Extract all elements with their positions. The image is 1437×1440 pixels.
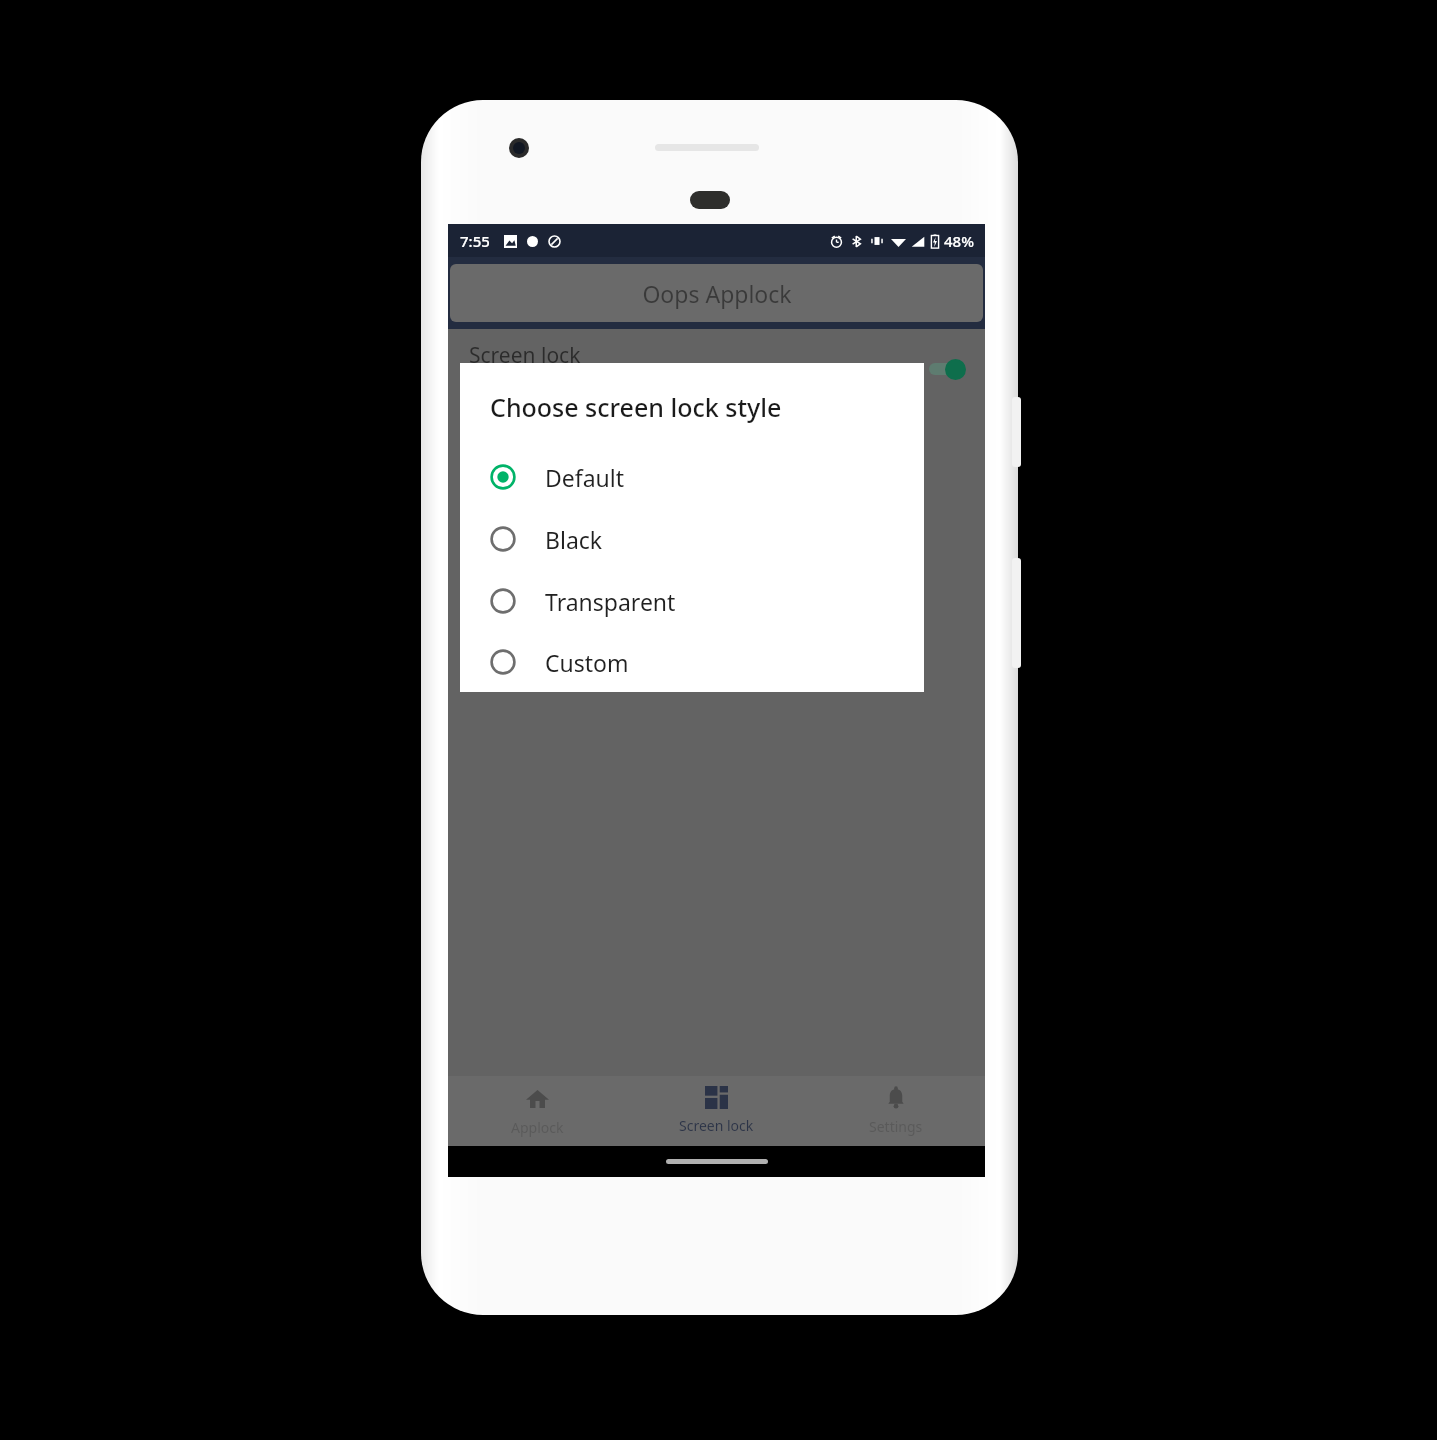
staticText: Custom	[545, 647, 629, 678]
button[interactable]: Screen lock	[627, 1076, 806, 1146]
staticText: Transparent	[545, 586, 676, 617]
staticText: Screen lock	[679, 1116, 754, 1135]
staticText: Set screenlock style	[469, 455, 607, 475]
button[interactable]: Applock	[448, 1076, 627, 1146]
staticText: Choose screen lock style	[490, 390, 782, 424]
staticText: Black	[545, 524, 603, 555]
button[interactable]: Black	[460, 508, 924, 570]
staticText: Settings	[869, 1117, 923, 1136]
staticText: Applock	[511, 1118, 564, 1137]
staticText: Oops Applock	[642, 278, 792, 309]
button[interactable]: Screen lock style	[448, 420, 985, 485]
button[interactable]: Default	[460, 446, 924, 508]
staticText: Default	[545, 462, 625, 493]
button[interactable]: Transparent	[460, 570, 924, 632]
button[interactable]: Settings	[806, 1076, 985, 1146]
staticText: 48%	[944, 231, 974, 251]
button[interactable]: Screen lock	[448, 329, 985, 404]
staticText: Screen lock	[469, 341, 581, 370]
button[interactable]: Oops Applock	[450, 264, 983, 322]
button[interactable]: Custom	[460, 632, 924, 692]
staticText: 7:55	[460, 231, 490, 251]
button[interactable]: Screen lock toggle	[925, 357, 967, 381]
